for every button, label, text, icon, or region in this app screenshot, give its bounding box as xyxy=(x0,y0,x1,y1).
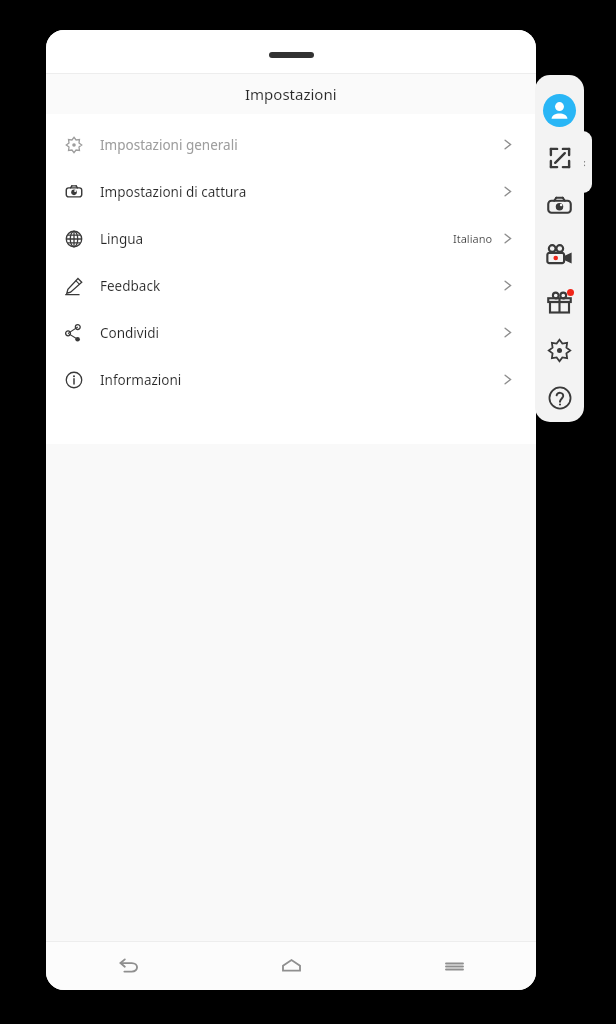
staticText: Impostazioni di cattura xyxy=(100,183,247,201)
button[interactable]: Impostazioni generali xyxy=(46,121,536,168)
staticText: Italiano xyxy=(453,231,493,246)
button[interactable]: Hide toolbar xyxy=(563,131,592,193)
button[interactable]: Feedback xyxy=(46,262,536,309)
button[interactable]: Back xyxy=(46,942,210,990)
staticText: Informazioni xyxy=(100,371,182,389)
button[interactable]: Informazioni xyxy=(46,356,536,403)
staticText: Impostazioni xyxy=(245,84,337,104)
staticText: ‹ xyxy=(582,154,586,170)
staticText: Condividi xyxy=(100,324,159,342)
button[interactable]: Recent apps xyxy=(373,942,536,990)
button[interactable]: Screenshot xyxy=(535,182,584,230)
button[interactable]: Home xyxy=(210,942,373,990)
button[interactable]: Impostazioni di cattura xyxy=(46,168,536,215)
button[interactable]: Help xyxy=(535,374,584,422)
button[interactable]: Full screen xyxy=(535,134,584,182)
staticText: Impostazioni generali xyxy=(100,136,238,154)
button[interactable]: Account xyxy=(535,86,584,134)
button[interactable]: Condividi xyxy=(46,309,536,356)
button[interactable]: Record video xyxy=(535,230,584,278)
button[interactable]: Settings xyxy=(535,326,584,374)
staticText: Feedback xyxy=(100,277,161,295)
staticText: Lingua xyxy=(100,230,144,248)
button[interactable]: Lingua xyxy=(46,215,536,262)
button[interactable]: Gifts xyxy=(535,278,584,326)
